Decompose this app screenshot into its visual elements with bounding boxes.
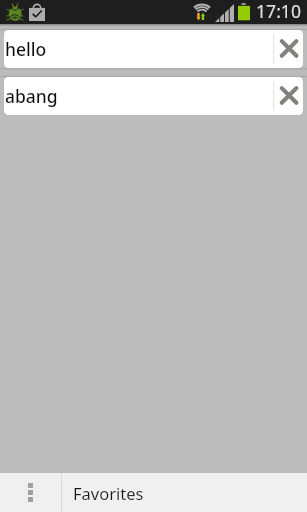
button[interactable]: abang: [4, 77, 303, 115]
staticText: Favorites: [73, 482, 144, 504]
button[interactable]: hello: [4, 30, 303, 68]
button[interactable]: More options: [0, 473, 61, 512]
staticText: 17:10: [256, 0, 301, 23]
button[interactable]: Clear text: [271, 30, 303, 68]
button[interactable]: Favorites: [62, 473, 307, 512]
staticText: abang: [5, 84, 58, 108]
staticText: hello: [5, 37, 47, 61]
button[interactable]: Clear text: [271, 77, 303, 115]
